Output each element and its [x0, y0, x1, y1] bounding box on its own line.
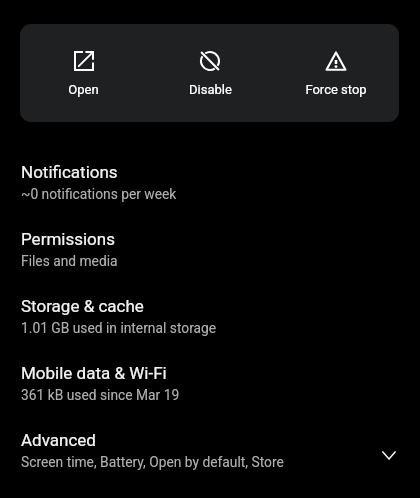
staticText: Open — [68, 82, 99, 97]
staticText: Files and media — [21, 253, 118, 269]
button[interactable]: Notifications — [0, 154, 420, 221]
staticText: Force stop — [305, 82, 367, 97]
staticText: Advanced — [21, 430, 96, 450]
button[interactable]: Open — [20, 24, 147, 122]
button[interactable]: Mobile data & Wi-Fi — [0, 355, 420, 422]
staticText: Storage & cache — [21, 296, 144, 316]
button[interactable]: Force stop — [273, 24, 399, 122]
button[interactable]: Advanced — [0, 422, 420, 489]
button[interactable]: Disable — [147, 24, 273, 122]
button[interactable]: Storage & cache — [0, 288, 420, 355]
staticText: Permissions — [21, 229, 115, 249]
staticText: Notifications — [21, 162, 118, 182]
staticText: Screen time, Battery, Open by default, S… — [21, 454, 284, 470]
staticText: 1.01 GB used in internal storage — [21, 320, 217, 336]
staticText: 361 kB used since Mar 19 — [21, 387, 180, 403]
button[interactable]: Permissions — [0, 221, 420, 288]
staticText: ~0 notifications per week — [21, 186, 177, 202]
other: Show advanced settings — [382, 451, 396, 460]
staticText: Mobile data & Wi-Fi — [21, 363, 167, 383]
staticText: Disable — [189, 82, 232, 97]
